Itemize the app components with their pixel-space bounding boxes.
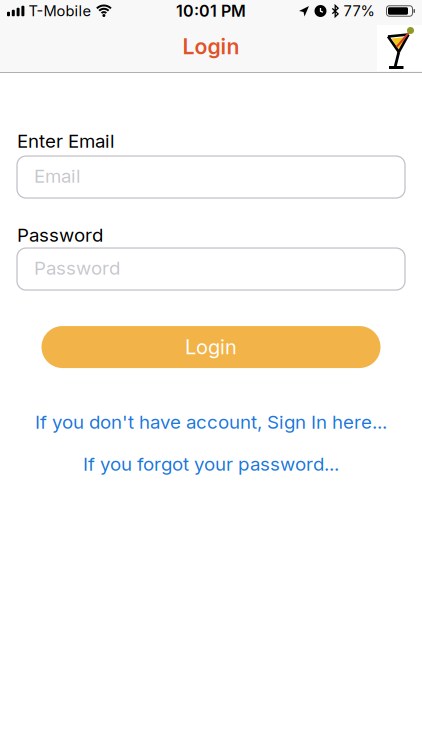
staticText: Login (185, 335, 237, 359)
staticText: Password (17, 224, 103, 246)
button[interactable]: If you don't have account, Sign In here.… (35, 411, 387, 433)
button[interactable] (377, 25, 422, 71)
staticText: Password (34, 257, 120, 279)
button[interactable]: If you forgot your password... (83, 453, 339, 475)
staticText: Email (34, 165, 81, 187)
button[interactable]: Password (17, 248, 405, 290)
staticText: If you don't have account, Sign In here.… (35, 411, 387, 433)
staticText: 10:01 PM (176, 2, 246, 20)
staticText: Enter Email (17, 130, 115, 152)
button[interactable]: Email (17, 156, 405, 198)
button[interactable]: Login (41, 326, 380, 368)
staticText: 77% (343, 2, 374, 20)
staticText: T-Mobile (28, 2, 91, 20)
staticText: Login (182, 34, 239, 59)
staticText: If you forgot your password... (83, 453, 339, 475)
